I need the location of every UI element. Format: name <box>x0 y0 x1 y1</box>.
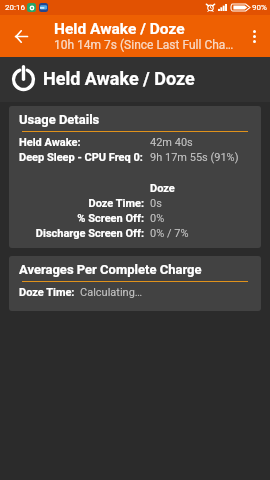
staticText: 20:16 <box>5 3 25 12</box>
staticText: 0% <box>150 212 165 225</box>
staticText: 0% / 7% <box>150 227 189 240</box>
staticText: Calculating… <box>80 286 143 299</box>
staticText: Doze Time: <box>19 286 75 299</box>
staticText: Doze <box>150 182 175 195</box>
staticText: Averages Per Complete Charge <box>19 262 202 277</box>
staticText: Held Awake / Doze <box>54 20 185 38</box>
staticText: 10h 14m 7s (Since Last Full Cha… <box>54 38 234 52</box>
staticText: 9h 17m 55s (91%) <box>150 151 239 164</box>
staticText: Held Awake / Doze <box>43 68 195 89</box>
staticText: Discharge Screen Off: <box>35 227 144 240</box>
staticText: Doze Time: <box>88 197 144 210</box>
button[interactable]: Back <box>3 18 39 54</box>
button[interactable]: More options <box>240 15 266 57</box>
staticText: Held Awake: <box>19 136 81 149</box>
staticText: % Screen Off: <box>77 212 144 225</box>
staticText: 90% <box>252 3 267 12</box>
staticText: 0s <box>150 197 162 210</box>
staticText: Usage Details <box>19 112 100 127</box>
staticText: 42m 40s <box>150 136 193 149</box>
staticText: Deep Sleep - CPU Freq 0: <box>19 151 143 164</box>
